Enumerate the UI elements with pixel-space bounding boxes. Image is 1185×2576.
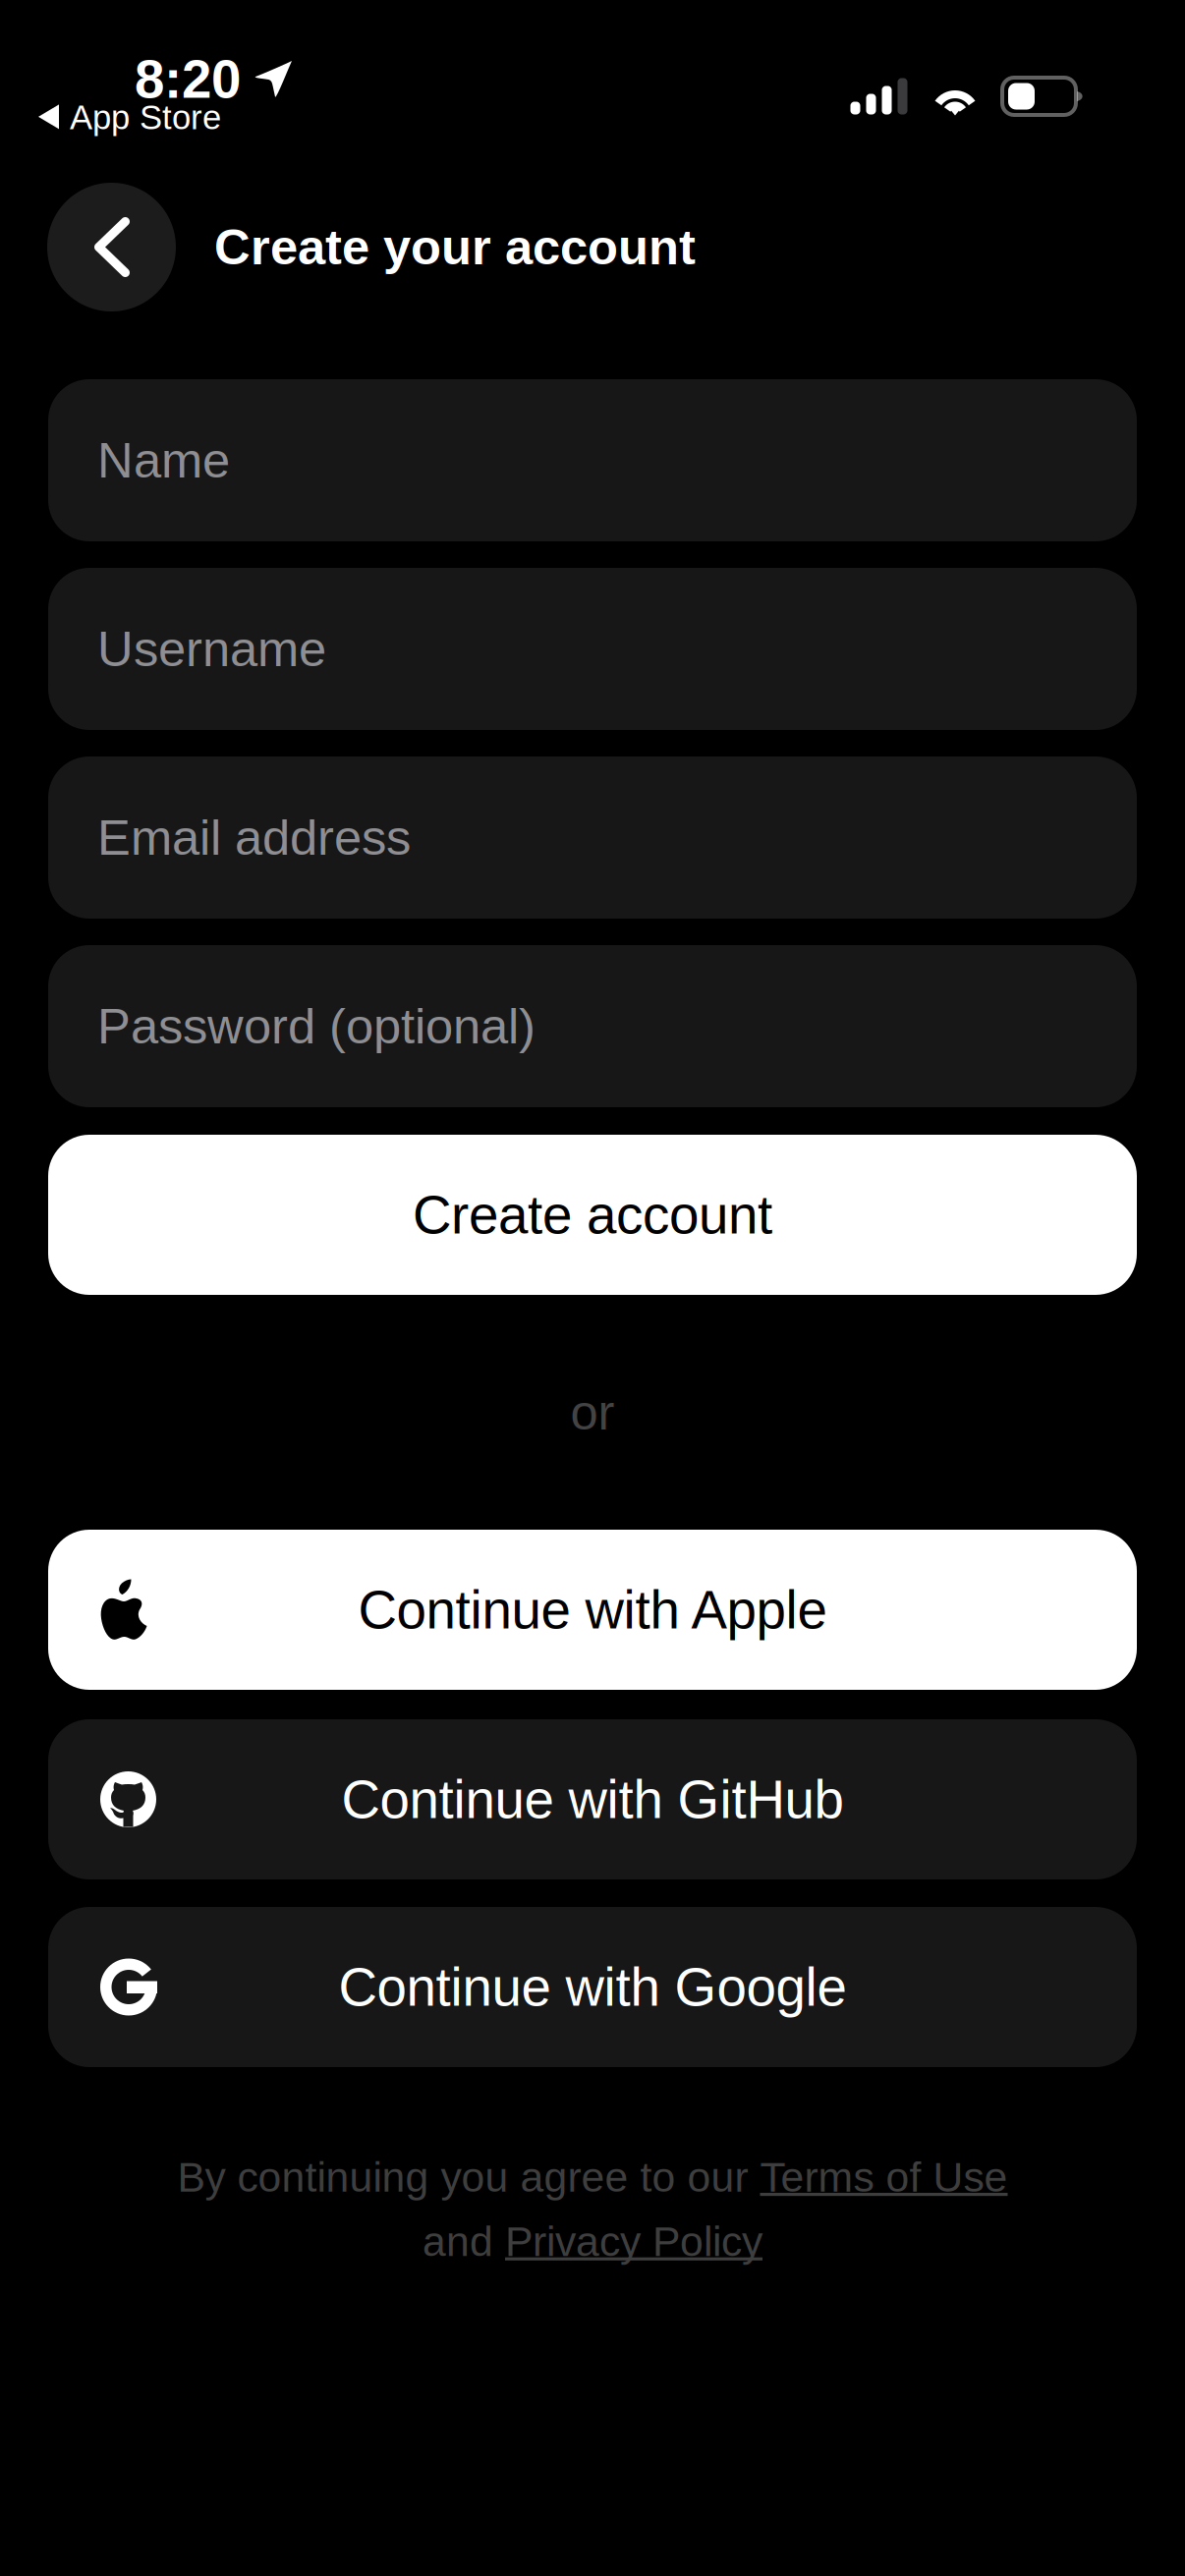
staticText: and xyxy=(423,2218,505,2265)
button[interactable]: Privacy Policy xyxy=(505,2218,762,2265)
button[interactable]: Back xyxy=(47,183,176,311)
staticText: Terms of Use xyxy=(760,2154,1008,2200)
staticText: Email address xyxy=(97,810,411,865)
button[interactable]: Continue with GitHub xyxy=(48,1719,1137,1879)
button[interactable]: Password (optional) xyxy=(48,945,1137,1107)
button[interactable]: Continue with Google xyxy=(48,1907,1137,2067)
button[interactable]: Email address xyxy=(48,756,1137,919)
staticText: Name xyxy=(97,432,230,488)
staticText: App Store xyxy=(70,98,221,136)
staticText: By continuing you agree to our xyxy=(177,2154,760,2200)
staticText: Continue with Google xyxy=(339,1957,846,2017)
staticText: 8:20 xyxy=(135,49,241,109)
button[interactable]: Continue with Apple xyxy=(48,1530,1137,1690)
staticText: or xyxy=(570,1384,615,1440)
staticText: Password (optional) xyxy=(97,998,536,1054)
staticText: Create account xyxy=(413,1185,772,1245)
button[interactable]: Terms of Use xyxy=(760,2154,1008,2200)
staticText: Privacy Policy xyxy=(505,2218,762,2265)
staticText: Create your account xyxy=(214,219,696,275)
button[interactable]: Username xyxy=(48,568,1137,730)
button[interactable]: Name xyxy=(48,379,1137,541)
button[interactable]: Create account xyxy=(48,1135,1137,1295)
staticText: Continue with GitHub xyxy=(341,1769,844,1829)
staticText: Username xyxy=(97,621,326,677)
staticText: Continue with Apple xyxy=(358,1580,827,1640)
